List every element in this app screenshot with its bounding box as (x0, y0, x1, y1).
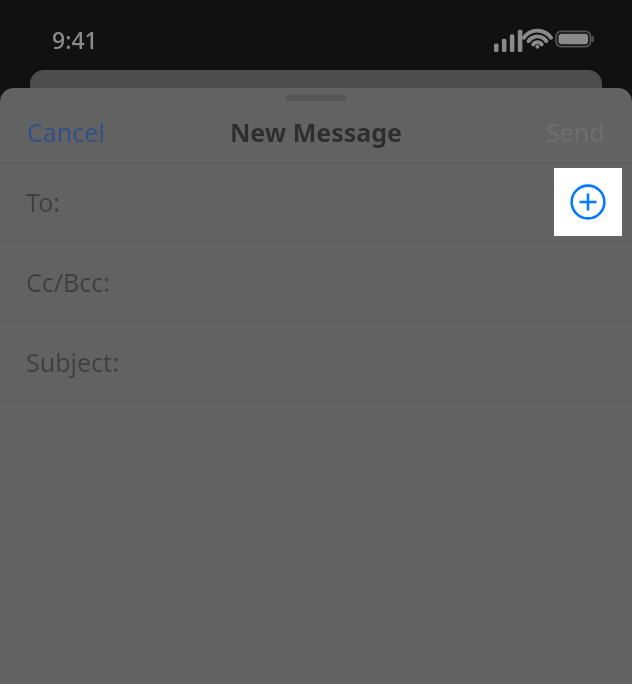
staticText: 9:41 (52, 24, 98, 55)
button[interactable]: To: (0, 163, 632, 241)
staticText: To: (26, 185, 60, 219)
staticText: Subject: (26, 345, 119, 379)
staticText: Cc/Bcc: (26, 265, 111, 299)
staticText: Send (546, 115, 605, 149)
button[interactable]: Cancel (0, 105, 132, 159)
staticText: New Message (230, 115, 402, 149)
button[interactable]: Add contact (554, 168, 622, 236)
staticText: Cancel (27, 115, 105, 149)
button[interactable]: Subject: (0, 322, 632, 401)
